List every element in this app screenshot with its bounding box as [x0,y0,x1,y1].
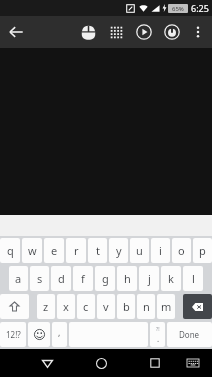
button[interactable]: , [52,322,67,347]
staticText: , [58,326,61,338]
button[interactable]: Keypad [102,18,130,46]
button[interactable]: Power [158,18,186,46]
button[interactable]: Play [130,18,158,46]
button[interactable]: 12!? [0,322,26,347]
staticText: n [143,299,150,314]
button[interactable]: Emoji [28,322,50,347]
button[interactable]: s [30,266,49,291]
button[interactable]: c [77,294,95,319]
staticText: k [168,271,174,286]
button[interactable]: u [130,238,149,263]
staticText: o [178,243,185,258]
staticText: u [136,243,143,258]
button[interactable]: i [151,238,170,263]
button[interactable]: Hide keyboard [181,351,205,375]
button[interactable]: q [0,238,20,263]
button[interactable]: a [9,266,28,291]
staticText: x [63,299,69,314]
button[interactable]: x [57,294,75,319]
button[interactable]: g [95,266,115,291]
staticText: f [81,271,85,286]
staticText: l [192,271,195,286]
staticText: j [148,271,151,286]
button[interactable]: Shift [0,294,29,319]
button[interactable]: y [109,238,128,263]
button[interactable]: f [73,266,93,291]
button[interactable]: b [117,294,135,319]
staticText: g [102,271,109,286]
button[interactable]: z [37,294,55,319]
button[interactable]: k [161,266,181,291]
staticText: p [199,243,206,258]
staticText: d [58,271,65,286]
button[interactable]: Home [87,349,115,377]
button[interactable]: Back [0,16,32,48]
button[interactable]: Done [167,322,212,347]
staticText: s [37,271,43,286]
button[interactable]: Backspace [183,294,212,319]
staticText: m [161,299,172,314]
staticText: h [124,271,131,286]
staticText: Done [179,329,200,340]
staticText: z [43,299,49,314]
staticText: b [123,299,130,314]
button[interactable]: e [44,238,64,263]
staticText: 6:25 [191,2,209,14]
staticText: ?! [156,326,160,333]
button[interactable]: t [88,238,107,263]
staticText: t [96,243,100,258]
staticText: e [51,243,58,258]
staticText: a [15,271,22,286]
button[interactable]: Recents [141,349,169,377]
staticText: q [7,243,14,258]
button[interactable]: d [51,266,71,291]
staticText: i [159,243,162,258]
button[interactable]: Back [33,349,61,377]
button[interactable]: r [66,238,86,263]
staticText: 12!? [6,329,21,340]
button[interactable]: j [139,266,159,291]
button[interactable]: p [193,238,212,263]
button[interactable]: h [117,266,137,291]
staticText: r [74,243,79,258]
staticText: v [103,299,109,314]
button[interactable]: n [137,294,155,319]
staticText: 65% [172,5,184,13]
staticText: y [116,243,122,258]
button[interactable]: Mouse [74,18,102,46]
button[interactable]: o [172,238,191,263]
button[interactable]: m [157,294,175,319]
button[interactable]: More options [186,20,210,44]
staticText: c [83,299,89,314]
staticText: w [28,243,37,258]
button[interactable]: w [22,238,42,263]
button[interactable]: v [97,294,115,319]
button[interactable]: l [183,266,203,291]
button[interactable]: ?! [150,322,165,347]
staticText: . [157,333,160,344]
